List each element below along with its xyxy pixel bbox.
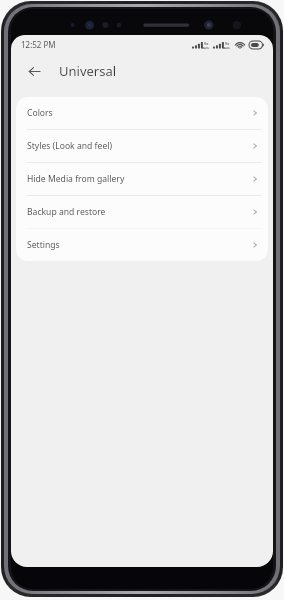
staticText: Styles (Look and feel) <box>27 140 113 152</box>
button[interactable]: Settings <box>16 229 268 261</box>
staticText: Universal <box>59 62 117 80</box>
staticText: WiFi <box>223 46 231 49</box>
button[interactable]: Backup and restore <box>16 196 268 228</box>
button[interactable]: Styles (Look and feel) <box>16 130 268 162</box>
staticText: Vo <box>225 41 230 46</box>
button[interactable]: Colors <box>16 97 268 129</box>
staticText: WiFi <box>202 46 210 49</box>
staticText: Hide Media from gallery <box>27 173 125 185</box>
staticText: Vo <box>204 41 209 46</box>
staticText: 12:52 PM <box>21 39 56 50</box>
button[interactable]: Hide Media from gallery <box>16 163 268 195</box>
staticText: Colors <box>27 107 53 119</box>
button[interactable]: Back <box>23 60 45 82</box>
staticText: Backup and restore <box>27 206 106 218</box>
staticText: Settings <box>27 239 60 251</box>
